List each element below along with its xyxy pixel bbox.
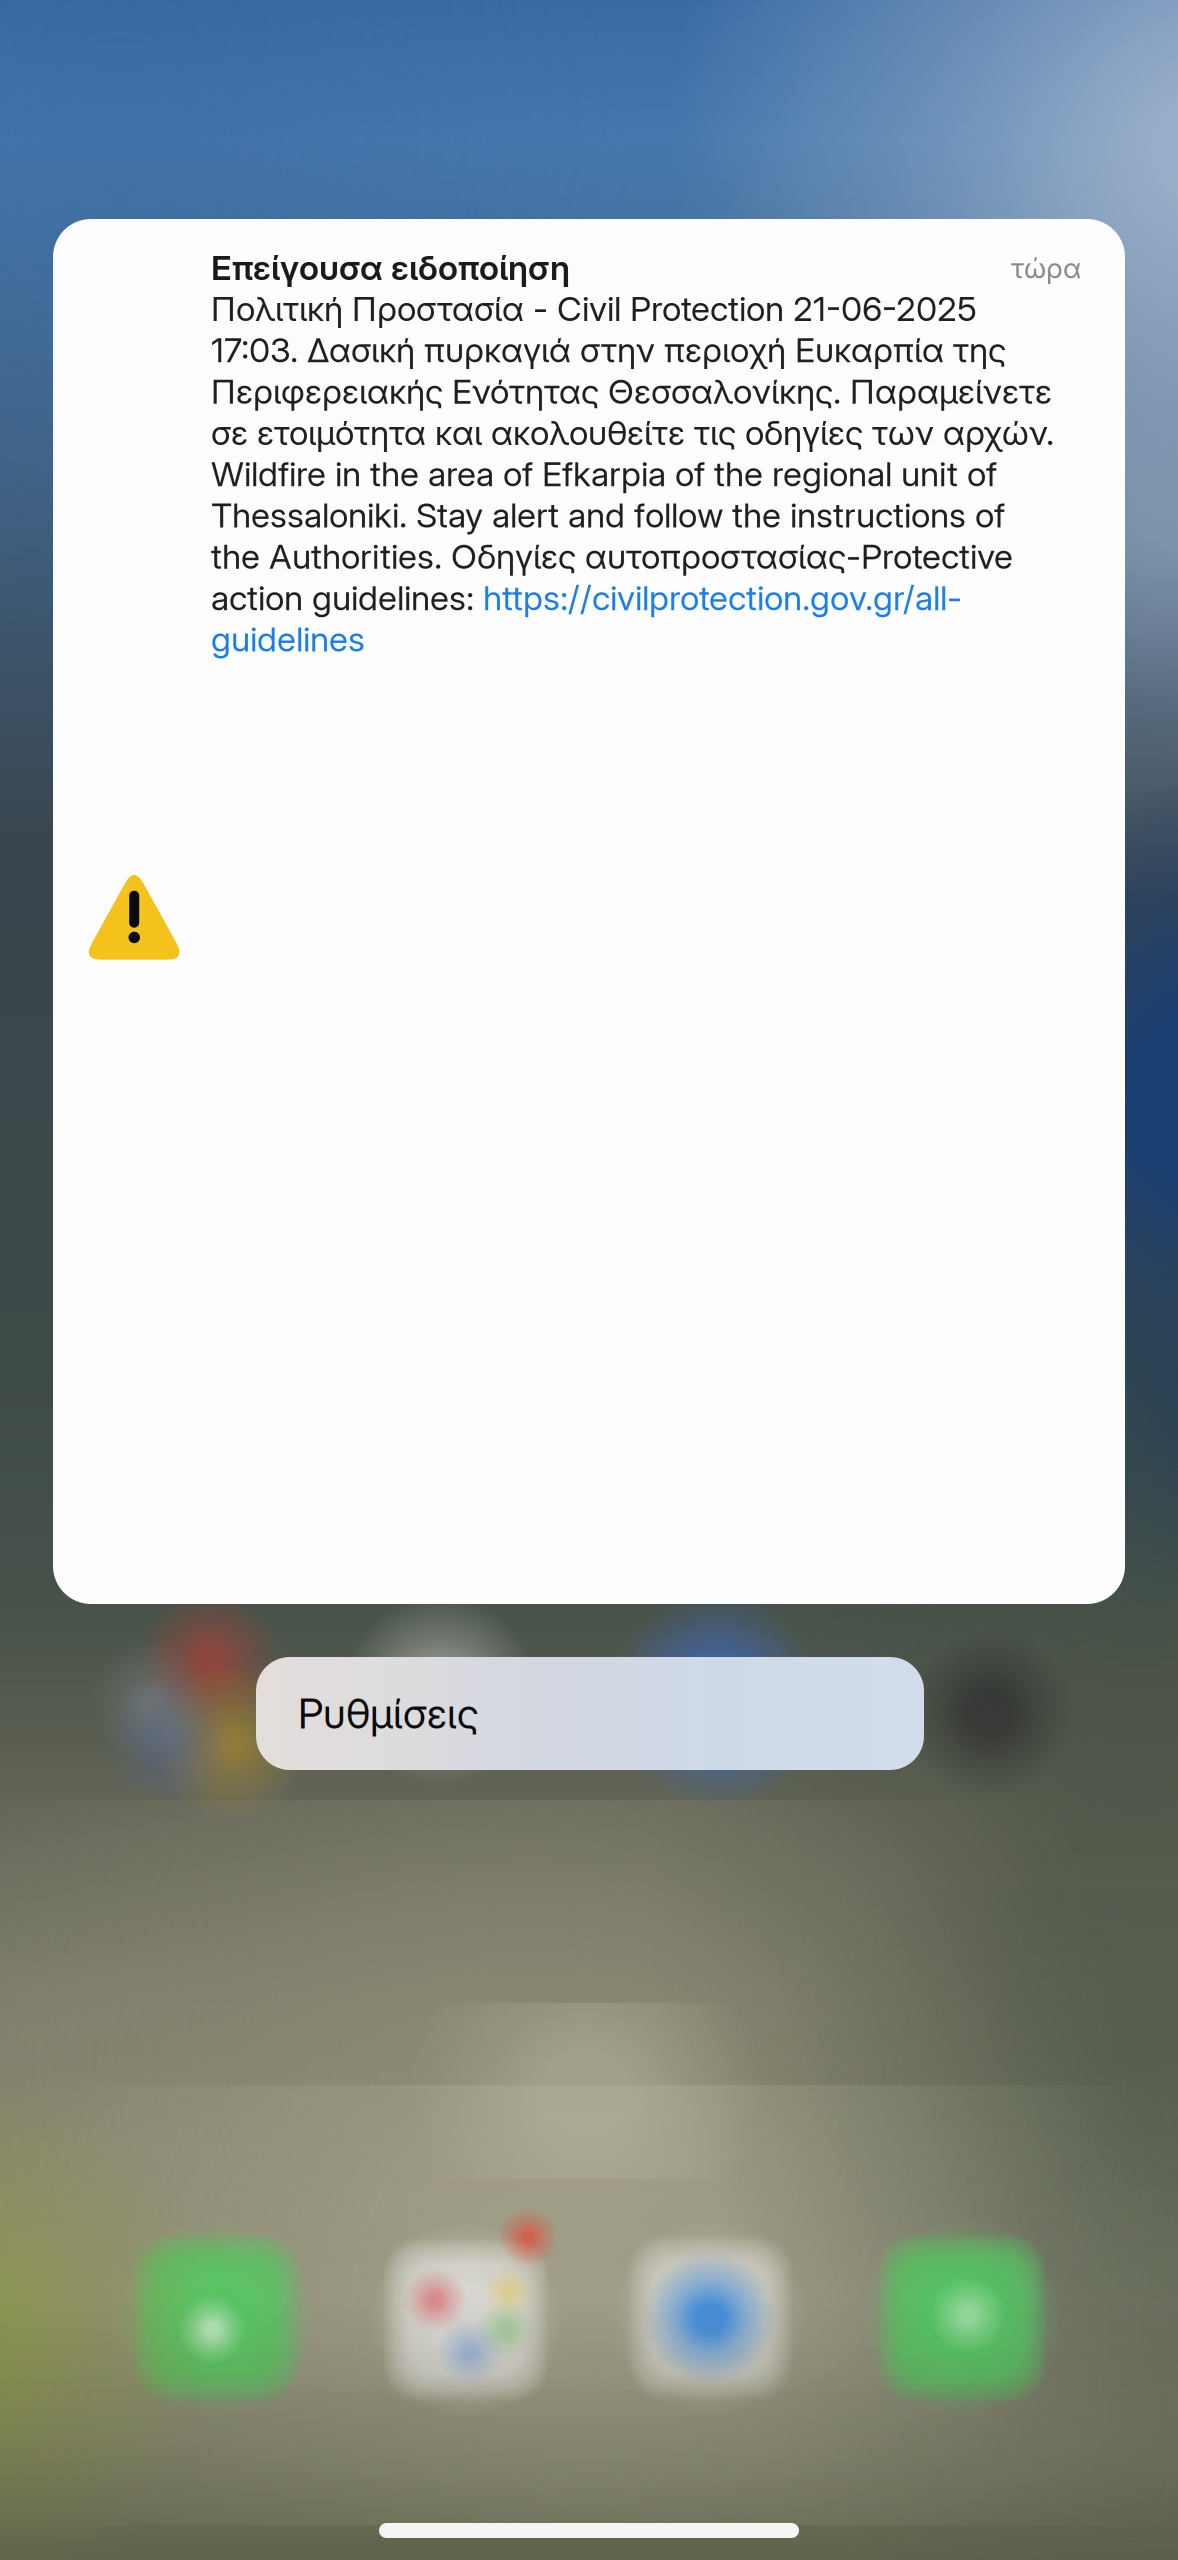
button[interactable]: Ρυθμίσεις: [256, 1657, 924, 1770]
staticText: Ρυθμίσεις: [298, 1688, 479, 1738]
staticText: Πολιτική Προστασία - Civil Protection 21…: [211, 288, 1054, 660]
staticText: Επείγουσα ειδοποίηση: [211, 247, 570, 288]
staticText: τώρα: [1011, 251, 1081, 285]
button[interactable]: Επείγουσα ειδοποίηση: [53, 219, 1125, 1604]
